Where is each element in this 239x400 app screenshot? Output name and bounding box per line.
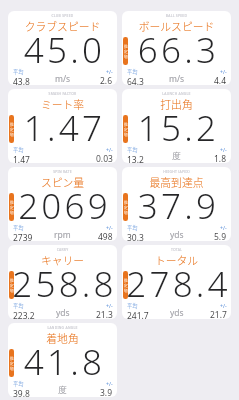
staticText: 223.2 [13,310,35,319]
staticText: rpm [54,229,71,241]
staticText: 平均 [13,302,24,310]
staticText: 推 [124,122,128,127]
staticText: LANDING ANGLE [8,325,117,330]
staticText: LAUNCH ANGLE [122,91,231,96]
staticText: 2.6 [100,75,113,85]
staticText: 定 [10,127,14,132]
button[interactable]: LANDING ANGLE [8,323,117,397]
staticText: 最高到達点 [122,174,231,190]
staticText: CARRY [8,247,117,252]
staticText: 推 [10,356,14,361]
staticText: SMASH FACTOR [8,91,117,96]
staticText: 打出角 [122,96,231,112]
staticText: 45.0 [10,26,117,74]
staticText: +/- [220,68,227,75]
staticText: 定 [124,205,128,210]
staticText: 66.3 [124,26,231,74]
staticText: +/- [220,146,227,153]
staticText: 4.4 [214,75,227,85]
staticText: 241.7 [127,310,149,319]
staticText: 定 [10,283,14,288]
staticText: +/- [106,380,113,387]
staticText: 値 [10,366,14,371]
staticText: 5.9 [214,231,227,241]
staticText: +/- [220,224,227,231]
staticText: 定 [124,127,128,132]
staticText: 値 [124,54,128,59]
staticText: 43.8 [13,76,30,85]
staticText: 278.4 [124,260,231,308]
staticText: 30.3 [127,232,144,241]
button[interactable]: CLUB SPEED [8,11,117,85]
staticText: 値 [124,210,128,215]
staticText: 定 [10,361,14,366]
staticText: 度 [58,385,67,396]
staticText: CLUB SPEED [8,13,117,18]
staticText: 平均 [13,146,24,154]
staticText: 258.8 [10,260,117,308]
staticText: 度 [172,151,181,162]
staticText: +/- [106,302,113,309]
button[interactable]: LAUNCH ANGLE [122,89,231,163]
staticText: 13.2 [127,154,144,163]
staticText: 推 [124,278,128,283]
staticText: +/- [220,302,227,309]
staticText: 推 [124,44,128,49]
staticText: 値 [10,288,14,293]
staticText: 推 [10,122,14,127]
staticText: 平均 [13,224,24,232]
staticText: yds [56,307,70,319]
staticText: 平均 [127,302,138,310]
button[interactable]: BALL SPEED [122,11,231,85]
staticText: 39.8 [13,388,30,397]
staticText: 平均 [13,68,24,76]
staticText: BALL SPEED [122,13,231,18]
button[interactable]: TOTAL [122,245,231,319]
staticText: 定 [124,49,128,54]
staticText: 1.47 [10,104,117,152]
staticText: 値 [10,132,14,137]
staticText: ボールスピード [122,18,231,34]
staticText: HEIGHT (APEX) [122,169,231,174]
staticText: 平均 [127,146,138,154]
staticText: 着地角 [8,330,117,346]
staticText: 3.9 [100,387,113,397]
staticText: 値 [10,210,14,215]
button[interactable]: HEIGHT (APEX) [122,167,231,241]
staticText: 推 [124,200,128,205]
staticText: TOTAL [122,247,231,252]
staticText: 値 [124,288,128,293]
staticText: 定 [10,205,14,210]
staticText: 1.8 [214,153,227,163]
staticText: yds [170,229,184,241]
button[interactable]: CARRY [8,245,117,319]
staticText: +/- [106,68,113,75]
staticText: 15.2 [124,104,231,152]
staticText: 推 [10,200,14,205]
staticText: +/- [106,224,113,231]
button[interactable]: SMASH FACTOR [8,89,117,163]
staticText: 平均 [127,68,138,76]
staticText: 1.47 [13,154,30,163]
staticText: キャリー [8,252,117,268]
staticText: 498 [98,231,113,241]
staticText: 2739 [13,232,33,241]
staticText: 平均 [13,380,24,388]
staticText: クラブスピード [8,18,117,34]
staticText: 定 [124,283,128,288]
staticText: m/s [55,73,71,85]
staticText: +/- [106,146,113,153]
button[interactable]: SPIN RATE [8,167,117,241]
staticText: 推 [10,278,14,283]
staticText: m/s [169,73,185,85]
staticText: 41.8 [10,338,117,386]
staticText: 平均 [127,224,138,232]
staticText: 0.03 [96,153,113,163]
staticText: トータル [122,252,231,268]
staticText: 値 [124,132,128,137]
staticText: 21.7 [210,309,227,319]
staticText: スピン量 [8,174,117,190]
staticText: 2069 [10,182,117,230]
staticText: 37.9 [124,182,231,230]
staticText: yds [170,307,184,319]
